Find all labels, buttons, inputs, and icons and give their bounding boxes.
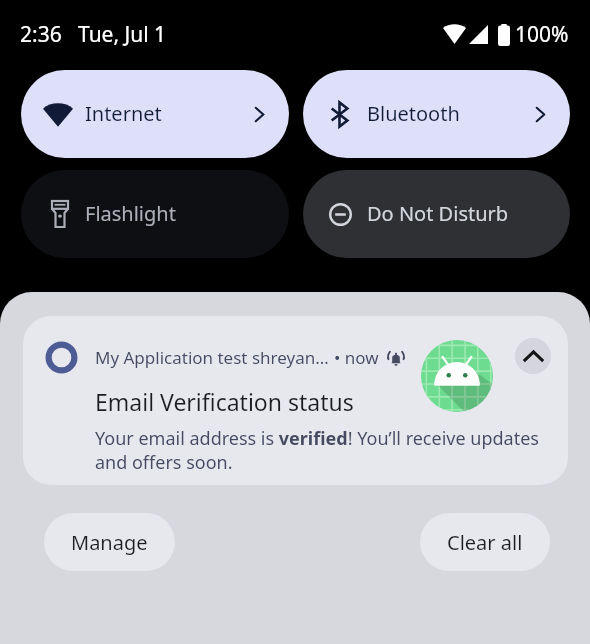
button[interactable]: Manage — [44, 513, 175, 571]
staticText: Email Verification status — [95, 386, 354, 417]
staticText: Your email address is verified! You’ll r… — [95, 426, 555, 474]
staticText: Bluetooth — [367, 100, 460, 127]
button[interactable]: My Application test shreyan… — [23, 316, 568, 485]
button[interactable]: Collapse notification — [515, 338, 551, 374]
button[interactable]: Flashlight — [21, 170, 289, 258]
staticText: Flashlight — [85, 200, 176, 227]
button[interactable]: Bluetooth — [303, 70, 570, 158]
staticText: Internet — [85, 100, 162, 127]
button[interactable]: Internet — [21, 70, 289, 158]
staticText: Clear all — [447, 529, 523, 556]
staticText: • now — [334, 346, 379, 369]
staticText: Manage — [71, 529, 148, 556]
staticText: 2:36 — [20, 20, 62, 49]
button[interactable]: Clear all — [420, 513, 550, 571]
staticText: Do Not Disturb — [367, 200, 509, 227]
button[interactable]: Do Not Disturb — [303, 170, 570, 258]
staticText: Tue, Jul 1 — [78, 20, 167, 49]
staticText: 100% — [515, 20, 569, 49]
staticText: My Application test shreyan… — [95, 346, 329, 369]
